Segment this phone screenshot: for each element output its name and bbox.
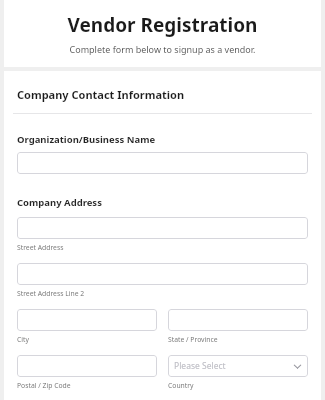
button[interactable]: [17, 309, 157, 331]
staticText: Street Address Line 2: [17, 289, 85, 298]
button[interactable]: [17, 263, 308, 285]
button[interactable]: Please Select: [168, 355, 308, 377]
staticText: Complete form below to signup as a vendo…: [18, 43, 307, 55]
button[interactable]: [17, 152, 308, 174]
staticText: Street Address: [17, 243, 64, 252]
button[interactable]: [17, 355, 157, 377]
button[interactable]: [17, 217, 308, 239]
staticText: City: [17, 335, 29, 344]
staticText: Organization/Business Name: [17, 133, 156, 146]
staticText: State / Province: [168, 335, 218, 344]
staticText: Postal / Zip Code: [17, 381, 71, 390]
staticText: Vendor Registration: [18, 12, 307, 38]
staticText: Company Contact Information: [17, 87, 185, 102]
staticText: Please Select: [174, 360, 293, 372]
button[interactable]: [168, 309, 308, 331]
staticText: Company Address: [17, 196, 102, 209]
staticText: Country: [168, 381, 194, 390]
